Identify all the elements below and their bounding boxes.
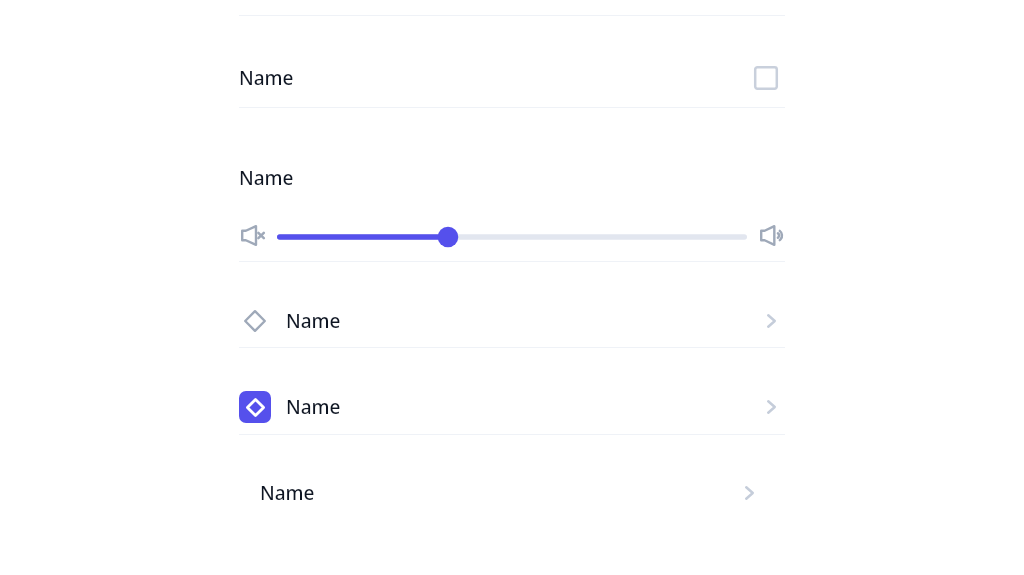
button[interactable]: Name [239,467,785,519]
button[interactable]: Name [239,381,785,433]
button[interactable]: Volume up [760,225,783,246]
staticText: Name [286,308,341,334]
button[interactable]: Name [239,295,785,347]
staticText: Name [286,394,341,420]
button[interactable]: Mute [241,225,265,246]
staticText: Name [239,165,294,191]
button[interactable]: Volume slider [277,226,747,248]
staticText: Name [260,480,315,506]
button[interactable]: Name [239,47,785,108]
button[interactable]: Checkbox, not checked [754,66,778,90]
staticText: Name [239,65,294,91]
